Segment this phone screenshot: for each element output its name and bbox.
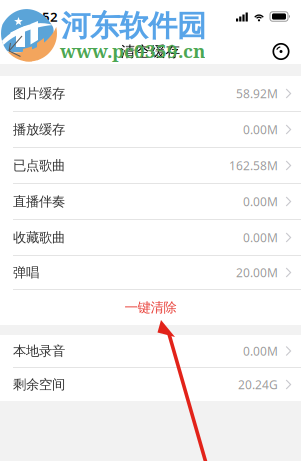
staticText: 0.00M [243,121,278,137]
staticText: 20.24G [238,376,278,392]
button[interactable]: 剩余空间 [0,368,301,401]
button[interactable]: 已点歌曲 [0,148,301,183]
staticText: 直播伴奏 [13,193,65,210]
staticText: 0.00M [243,229,278,245]
button[interactable]: 直播伴奏 [0,184,301,219]
staticText: 一键清除 [124,299,176,316]
staticText: 0.00M [243,193,278,209]
staticText: 162.58M [229,157,278,173]
staticText: 清空缓存 [120,42,180,60]
staticText: 16:52 [22,8,58,25]
button[interactable]: Music disc [272,42,290,60]
staticText: www.pc0359.cn [60,38,205,63]
button[interactable]: 一键清除 [0,290,301,325]
staticText: 已点歌曲 [13,157,65,174]
button[interactable]: 弹唱 [0,256,301,289]
staticText: 收藏歌曲 [13,229,65,246]
button[interactable]: 本地录音 [0,335,301,367]
staticText: 0.00M [243,343,278,359]
button[interactable]: 收藏歌曲 [0,220,301,255]
staticText: 播放缓存 [13,121,65,138]
staticText: 20.00M [236,264,278,280]
button[interactable]: 播放缓存 [0,112,301,147]
staticText: 剩余空间 [13,376,65,393]
staticText: 河东软件园 [61,8,206,44]
staticText: 图片缓存 [13,85,65,102]
staticText: 58.92M [236,85,278,101]
staticText: 本地录音 [13,343,65,359]
button[interactable]: 图片缓存 [0,76,301,111]
staticText: 弹唱 [13,264,39,281]
